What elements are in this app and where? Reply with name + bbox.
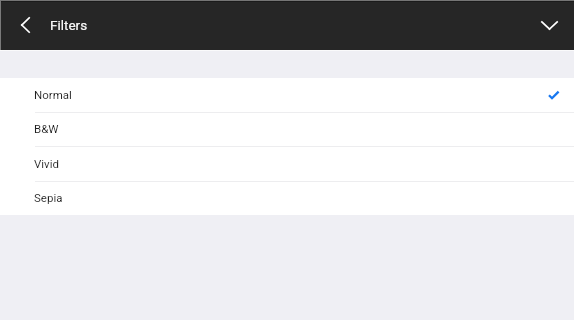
button[interactable]: B&W [0,112,574,146]
staticText: Vivid [34,157,59,170]
button[interactable]: Navigate back [10,10,40,40]
staticText: Normal [34,88,72,101]
staticText: Filters [50,17,88,33]
staticText: B&W [34,122,59,135]
button[interactable]: Collapse filter panel [533,9,565,41]
button[interactable]: Sepia [0,181,574,215]
button[interactable]: Vivid [0,147,574,181]
staticText: Sepia [34,191,63,204]
button[interactable]: Normal [0,78,574,112]
